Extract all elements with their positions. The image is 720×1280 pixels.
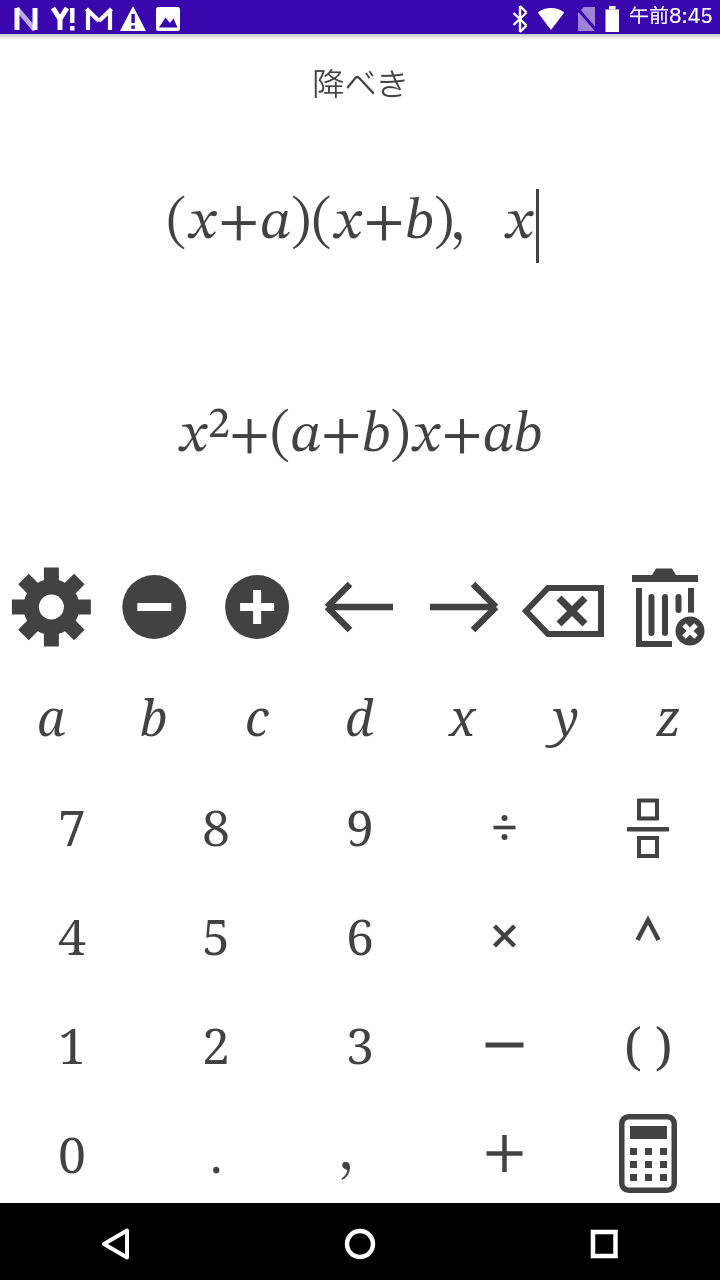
- staticText: .: [210, 1120, 223, 1188]
- button[interactable]: [576, 1100, 720, 1209]
- button[interactable]: [432, 882, 576, 991]
- button[interactable]: [576, 773, 720, 882]
- button[interactable]: y: [514, 663, 617, 771]
- staticText: 2: [202, 1011, 230, 1079]
- button[interactable]: ( ): [576, 991, 720, 1100]
- button[interactable]: [102, 553, 205, 661]
- staticText: 𝑥: [503, 195, 535, 252]
- staticText: d: [345, 684, 374, 751]
- button[interactable]: a: [0, 663, 102, 771]
- button[interactable]: [432, 773, 576, 882]
- button[interactable]: [432, 991, 576, 1100]
- staticText: 0: [58, 1120, 86, 1188]
- button[interactable]: [205, 553, 308, 661]
- button[interactable]: 1: [0, 991, 144, 1100]
- staticText: 𝑥²+(𝑎+𝑏)𝑥+𝑎𝑏: [177, 408, 543, 465]
- staticText: ，: [337, 1102, 394, 1184]
- button[interactable]: x: [411, 663, 514, 771]
- button[interactable]: 4: [0, 882, 144, 991]
- button[interactable]: 8: [144, 773, 288, 882]
- button[interactable]: [308, 553, 411, 661]
- button[interactable]: [514, 553, 617, 661]
- staticText: 7: [58, 793, 86, 861]
- button[interactable]: d: [308, 663, 411, 771]
- button[interactable]: 6: [288, 882, 432, 991]
- staticText: 午前8:45: [629, 2, 713, 32]
- staticText: z: [656, 684, 682, 751]
- button[interactable]: .: [144, 1100, 288, 1209]
- staticText: 9: [346, 793, 374, 861]
- button[interactable]: [617, 553, 720, 661]
- staticText: 降べき: [312, 62, 409, 110]
- button[interactable]: ，: [288, 1100, 432, 1209]
- staticText: (𝑥+𝑎)(𝑥+𝑏): [166, 195, 455, 252]
- button[interactable]: 2: [144, 991, 288, 1100]
- staticText: ，: [449, 174, 505, 254]
- staticText: ( ): [624, 1010, 673, 1079]
- button[interactable]: [432, 1100, 576, 1209]
- staticText: y: [553, 684, 579, 751]
- staticText: 6: [346, 902, 374, 970]
- staticText: 3: [346, 1011, 374, 1079]
- staticText: 4: [58, 902, 86, 970]
- staticText: x: [449, 684, 476, 751]
- staticText: b: [140, 684, 168, 751]
- button[interactable]: z: [617, 663, 720, 771]
- button[interactable]: 9: [288, 773, 432, 882]
- button[interactable]: 3: [288, 991, 432, 1100]
- button[interactable]: b: [102, 663, 205, 771]
- button[interactable]: 7: [0, 773, 144, 882]
- staticText: 1: [58, 1011, 86, 1079]
- button[interactable]: 0: [0, 1100, 144, 1209]
- button[interactable]: [0, 553, 102, 661]
- staticText: c: [245, 684, 269, 751]
- staticText: 5: [202, 902, 230, 970]
- staticText: a: [37, 684, 66, 751]
- button[interactable]: [411, 553, 514, 661]
- button[interactable]: 5: [144, 882, 288, 991]
- button[interactable]: c: [205, 663, 308, 771]
- button[interactable]: [576, 882, 720, 991]
- staticText: 8: [202, 793, 230, 861]
